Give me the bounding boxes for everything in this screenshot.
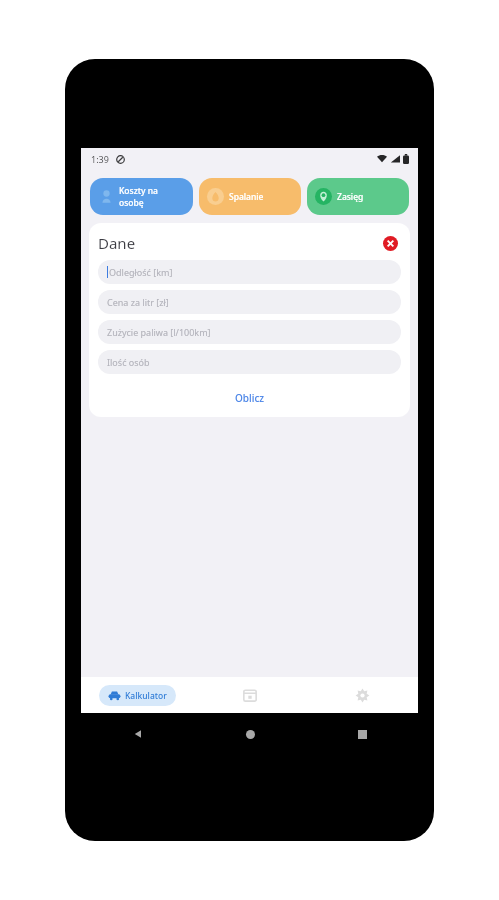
button[interactable]: Odległość [km] — [98, 260, 401, 284]
button[interactable]: Kalkulator — [99, 685, 176, 706]
staticText: osobę — [119, 197, 144, 209]
button[interactable]: Zasięg — [307, 178, 409, 215]
button[interactable]: Ekran główny — [194, 713, 306, 755]
staticText: Cena za litr [zł] — [107, 296, 169, 308]
staticText: Dane — [98, 233, 136, 253]
staticText: Odległość [km] — [109, 266, 173, 278]
button[interactable]: Ilość osób — [98, 350, 401, 374]
staticText: Zużycie paliwa [l/100km] — [107, 326, 211, 338]
button[interactable]: Wyczyść — [379, 232, 401, 254]
staticText: 1:39 — [91, 153, 109, 165]
button[interactable]: Spalanie — [199, 178, 301, 215]
staticText: Ilość osób — [107, 356, 150, 368]
button[interactable]: Ostatnie aplikacje — [306, 713, 418, 755]
staticText: Zasięg — [337, 191, 364, 203]
button[interactable]: Wstecz — [81, 713, 194, 755]
staticText: Koszty na — [119, 185, 158, 197]
button[interactable]: Zużycie paliwa [l/100km] — [98, 320, 401, 344]
button[interactable]: Historia — [194, 677, 306, 713]
staticText: Oblicz — [235, 391, 265, 405]
staticText: Spalanie — [229, 191, 264, 203]
button[interactable]: Koszty na — [90, 178, 193, 215]
button[interactable]: Ustawienia — [306, 677, 418, 713]
staticText: Kalkulator — [125, 690, 167, 702]
button[interactable]: Cena za litr [zł] — [98, 290, 401, 314]
button[interactable]: Oblicz — [98, 385, 401, 410]
